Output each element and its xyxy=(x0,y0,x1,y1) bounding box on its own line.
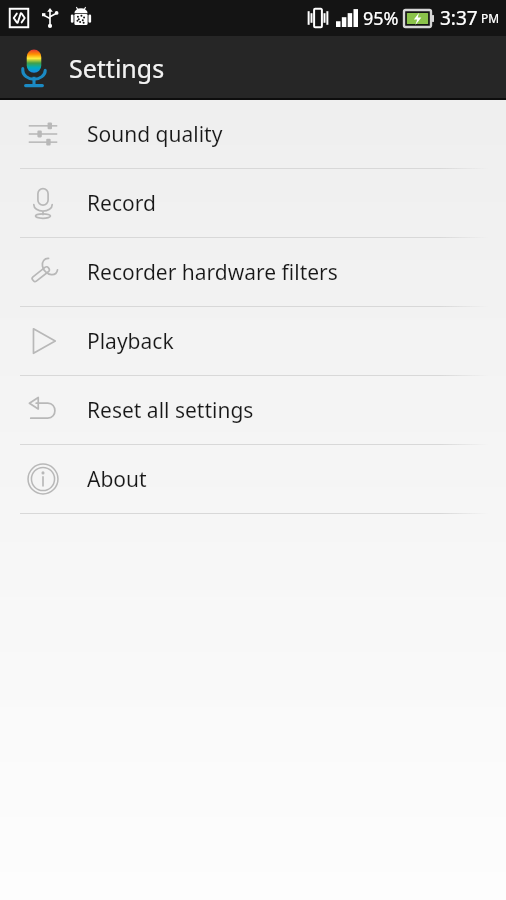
button[interactable]: Playback xyxy=(0,307,506,376)
staticText: Settings xyxy=(69,51,165,85)
staticText: 3:37 xyxy=(440,5,478,31)
staticText: About xyxy=(87,465,147,494)
button[interactable]: Recorder hardware filters xyxy=(0,238,506,307)
staticText: Recorder hardware filters xyxy=(87,258,338,287)
staticText: 95% xyxy=(363,6,399,31)
staticText: Sound quality xyxy=(87,120,223,149)
staticText: Reset all settings xyxy=(87,396,254,425)
button[interactable]: Reset all settings xyxy=(0,376,506,445)
button[interactable]: Sound quality xyxy=(0,100,506,169)
button[interactable]: About xyxy=(0,445,506,514)
button[interactable]: Record xyxy=(0,169,506,238)
staticText: Playback xyxy=(87,327,174,356)
staticText: PM xyxy=(481,10,500,26)
staticText: Record xyxy=(87,189,156,218)
